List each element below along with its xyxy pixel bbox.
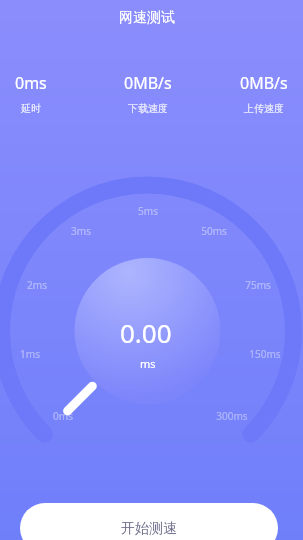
staticText: 0ms bbox=[53, 409, 73, 423]
button[interactable]: 0MB/s bbox=[103, 72, 193, 120]
staticText: 300ms bbox=[216, 409, 248, 423]
staticText: 延时 bbox=[21, 102, 41, 115]
button[interactable]: 开始测速 bbox=[20, 503, 278, 540]
staticText: 150ms bbox=[249, 347, 281, 361]
button[interactable]: 0ms bbox=[0, 72, 76, 120]
staticText: 1ms bbox=[20, 347, 40, 361]
staticText: 0ms bbox=[15, 72, 47, 94]
staticText: 5ms bbox=[138, 204, 158, 218]
staticText: 75ms bbox=[245, 278, 271, 292]
staticText: 开始测速 bbox=[121, 520, 177, 538]
staticText: 网速测试 bbox=[119, 9, 175, 27]
staticText: 3ms bbox=[71, 224, 91, 238]
staticText: 下载速度 bbox=[128, 102, 168, 115]
staticText: 0.00 bbox=[120, 315, 172, 345]
staticText: 2ms bbox=[27, 278, 47, 292]
staticText: 50ms bbox=[201, 224, 227, 238]
staticText: 0MB/s bbox=[124, 72, 172, 94]
staticText: ms bbox=[140, 356, 156, 371]
staticText: 0MB/s bbox=[240, 72, 288, 94]
staticText: 上传速度 bbox=[244, 102, 284, 115]
button[interactable]: 0MB/s bbox=[219, 72, 303, 120]
